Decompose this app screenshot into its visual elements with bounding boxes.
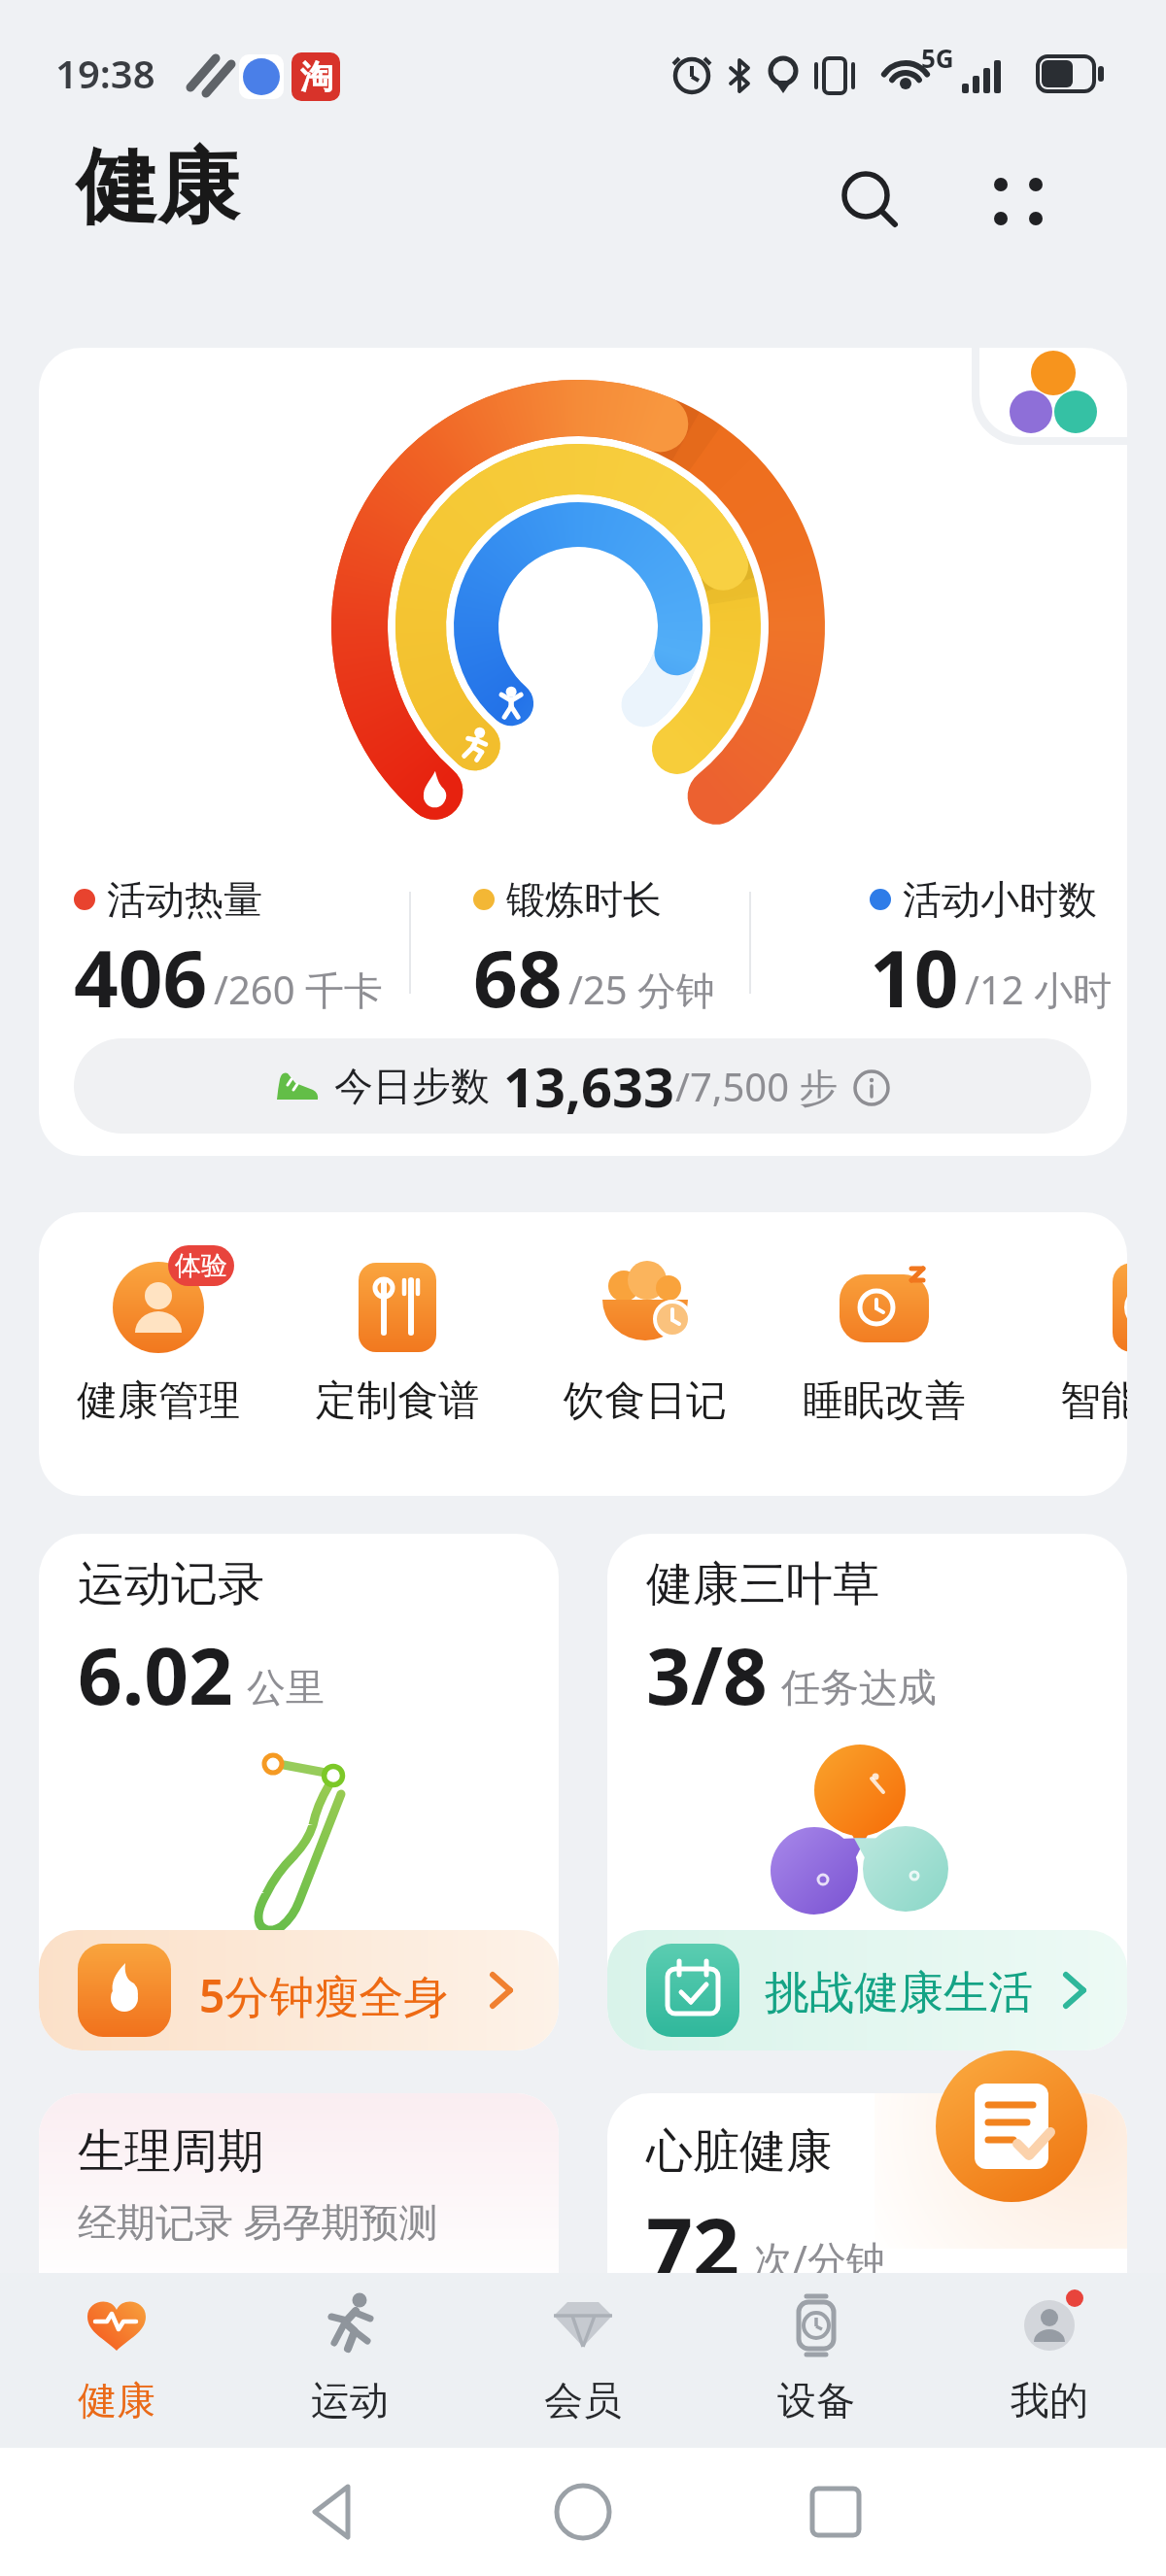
- staticText: 68: [473, 924, 563, 1030]
- staticText: 3/8: [646, 1621, 768, 1727]
- staticText: 体验: [175, 1249, 227, 1282]
- staticText: 运动: [311, 2376, 389, 2424]
- staticText: 锻炼时长: [506, 875, 662, 924]
- button[interactable]: 饮食日记: [548, 1251, 742, 1427]
- button[interactable]: [936, 2051, 1087, 2202]
- staticText: 定制食谱: [316, 1375, 479, 1427]
- button[interactable]: 心脏健康: [607, 2093, 1127, 2511]
- staticText: 活动小时数: [903, 875, 1097, 924]
- staticText: 会员: [544, 2376, 622, 2424]
- staticText: 今日步数: [334, 1062, 490, 1110]
- staticText: 生理周期: [78, 2122, 264, 2181]
- button[interactable]: 健康三叶草: [607, 1534, 1127, 2051]
- button[interactable]: [979, 160, 1057, 238]
- staticText: 公里: [247, 1663, 325, 1712]
- button[interactable]: 体验: [61, 1251, 256, 1427]
- staticText: 19:38: [55, 47, 155, 99]
- staticText: 13,633: [503, 1049, 675, 1123]
- staticText: 运动记录: [78, 1555, 264, 1613]
- staticText: 活动热量: [107, 875, 262, 924]
- button[interactable]: 会员: [466, 2273, 700, 2448]
- button[interactable]: 设备: [700, 2273, 933, 2448]
- staticText: 406: [74, 924, 208, 1030]
- staticText: 任务达成: [781, 1663, 937, 1712]
- staticText: 健康管理: [77, 1375, 240, 1427]
- staticText: /25 分钟: [568, 963, 716, 1016]
- button[interactable]: 睡眠改善: [787, 1251, 981, 1427]
- button[interactable]: 健康: [0, 2273, 233, 2448]
- staticText: 5G: [921, 41, 954, 75]
- staticText: 6.02: [78, 1621, 233, 1727]
- button[interactable]: 挑战健康生活: [607, 1930, 1127, 2051]
- button[interactable]: 我的: [933, 2273, 1166, 2448]
- staticText: 淘: [300, 56, 333, 98]
- staticText: 经期记录 易孕期预测: [78, 2194, 438, 2248]
- button[interactable]: 生理周期: [39, 2093, 559, 2511]
- staticText: 健康: [78, 2376, 155, 2424]
- staticText: 饮食日记: [564, 1375, 727, 1427]
- staticText: 挑战健康生活: [765, 1965, 1033, 2021]
- button[interactable]: 5分钟瘦全身: [39, 1930, 559, 2051]
- staticText: 智能穿戴: [1060, 1375, 1127, 1427]
- staticText: 睡眠改善: [803, 1375, 966, 1427]
- button[interactable]: 智能穿戴: [1045, 1251, 1127, 1427]
- staticText: 设备: [777, 2376, 855, 2424]
- button[interactable]: 定制食谱: [300, 1251, 495, 1427]
- button[interactable]: 今日步数: [74, 1038, 1091, 1134]
- staticText: 健康: [76, 136, 239, 239]
- staticText: 心脏健康: [646, 2122, 833, 2181]
- staticText: /7,500 步: [675, 1060, 839, 1113]
- staticText: 10: [870, 924, 959, 1030]
- button[interactable]: 活动热量: [39, 348, 1127, 1156]
- button[interactable]: 运动: [233, 2273, 466, 2448]
- staticText: 72: [646, 2190, 740, 2301]
- button[interactable]: [831, 160, 909, 238]
- staticText: 我的: [1011, 2376, 1088, 2424]
- staticText: 5分钟瘦全身: [199, 1965, 449, 2026]
- button[interactable]: [979, 348, 1127, 437]
- staticText: /12 小时: [965, 963, 1113, 1016]
- staticText: /260 千卡: [214, 963, 383, 1016]
- staticText: 健康三叶草: [646, 1555, 879, 1613]
- staticText: 次/分钟: [754, 2232, 885, 2286]
- button[interactable]: 运动记录: [39, 1534, 559, 2051]
